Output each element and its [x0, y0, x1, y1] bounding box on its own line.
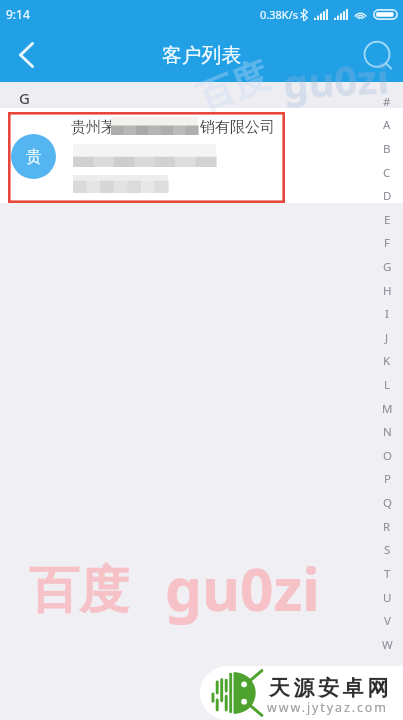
staticText: E	[384, 212, 391, 228]
button[interactable]: L	[375, 373, 399, 397]
staticText: #	[383, 94, 391, 110]
button[interactable]: V	[375, 609, 399, 633]
button[interactable]: A	[375, 113, 399, 137]
staticText: 0.38K/s	[260, 7, 298, 22]
button[interactable]: P	[375, 467, 399, 491]
button[interactable]: R	[375, 515, 399, 539]
staticText: B	[383, 141, 391, 157]
staticText: P	[384, 471, 391, 487]
button[interactable]: B	[375, 137, 399, 161]
staticText: 客户列表	[162, 43, 242, 68]
staticText: H	[383, 283, 392, 299]
button[interactable]: J	[375, 326, 399, 350]
staticText: L	[384, 377, 391, 393]
staticText: K	[383, 353, 391, 369]
staticText: M	[382, 401, 393, 417]
button[interactable]: D	[375, 184, 399, 208]
staticText: G	[19, 88, 30, 108]
button[interactable]: W	[375, 633, 399, 657]
staticText: gu0zi	[165, 548, 320, 628]
button[interactable]: Q	[375, 491, 399, 515]
staticText: O	[383, 448, 392, 464]
button[interactable]: C	[375, 161, 399, 185]
staticText: I	[385, 306, 389, 322]
staticText: U	[383, 590, 392, 606]
button[interactable]: Back	[2, 28, 50, 82]
staticText: D	[383, 188, 392, 204]
button[interactable]: U	[375, 586, 399, 610]
staticText: S	[384, 542, 391, 558]
staticText: 贵	[26, 147, 42, 167]
button[interactable]: O	[375, 444, 399, 468]
staticText: 销有限公司	[200, 118, 275, 137]
staticText: Q	[383, 495, 392, 511]
button[interactable]: E	[375, 208, 399, 232]
button[interactable]: N	[375, 420, 399, 444]
staticText: www.jytyaz.com	[267, 699, 388, 716]
staticText: 贵州茅	[71, 118, 116, 137]
staticText: T	[384, 566, 391, 582]
button[interactable]: M	[375, 397, 399, 421]
button[interactable]: T	[375, 562, 399, 586]
button[interactable]: K	[375, 349, 399, 373]
button[interactable]: #	[375, 90, 399, 114]
button[interactable]: F	[375, 231, 399, 255]
staticText: V	[384, 613, 391, 629]
staticText: R	[383, 519, 391, 535]
button[interactable]: S	[375, 538, 399, 562]
staticText: N	[383, 424, 392, 440]
button[interactable]: Search	[355, 28, 403, 82]
button[interactable]: G	[375, 255, 399, 279]
staticText: 百度	[29, 559, 129, 622]
staticText: A	[383, 117, 391, 133]
staticText: W	[382, 637, 393, 653]
button[interactable]: H	[375, 279, 399, 303]
staticText: J	[385, 330, 389, 346]
staticText: G	[383, 259, 392, 275]
staticText: 天源安卓网	[267, 675, 390, 701]
button[interactable]: 贵	[0, 108, 403, 203]
staticText: F	[384, 235, 390, 251]
staticText: 9:14	[6, 6, 30, 22]
staticText: gu0zi	[282, 50, 390, 110]
staticText: 百度	[191, 52, 275, 121]
button[interactable]: I	[375, 302, 399, 326]
staticText: C	[383, 165, 391, 181]
